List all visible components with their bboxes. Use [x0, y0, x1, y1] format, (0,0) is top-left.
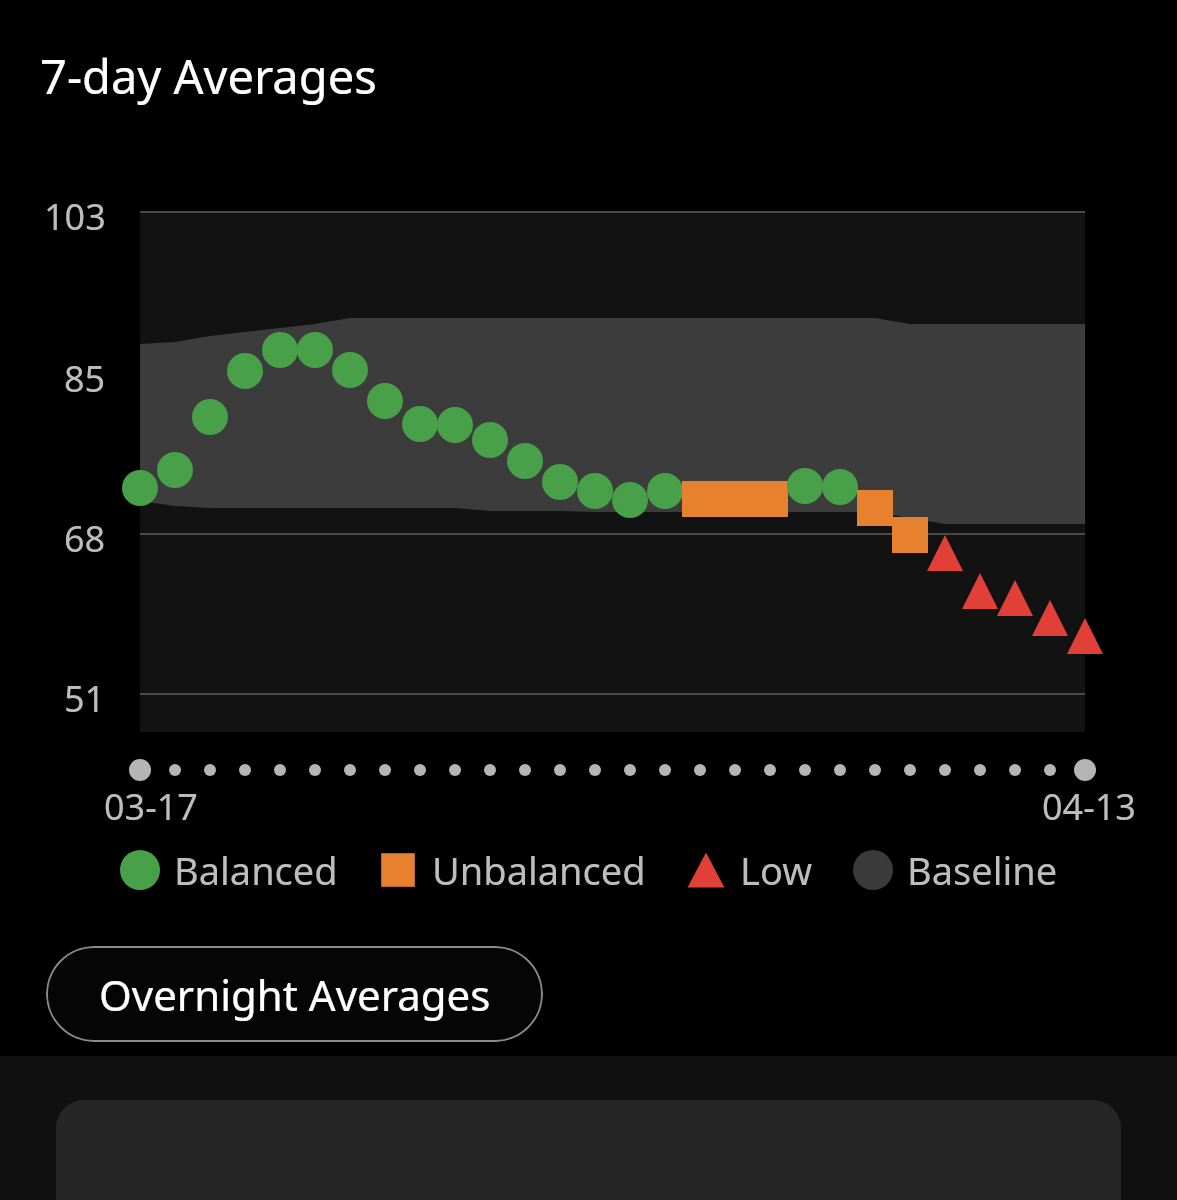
button[interactable]: Unbalanced	[378, 844, 646, 896]
staticText: 51	[64, 674, 106, 723]
staticText: 85	[64, 354, 106, 403]
staticText: 03-17	[104, 782, 198, 831]
button[interactable]: Baseline	[853, 844, 1058, 896]
staticText: Overnight Averages	[99, 966, 491, 1023]
staticText: Balanced	[174, 844, 338, 896]
staticText: 04-13	[1042, 782, 1136, 831]
button[interactable]: Balanced	[120, 844, 338, 896]
staticText: 7-day Averages	[40, 44, 377, 108]
staticText: Unbalanced	[432, 844, 646, 896]
staticText: 103	[44, 192, 106, 241]
staticText: 68	[64, 514, 106, 563]
staticText: Baseline	[907, 844, 1058, 896]
staticText: Low	[740, 844, 813, 896]
button[interactable]: Overnight Averages	[46, 946, 543, 1042]
button[interactable]: Low	[686, 844, 813, 896]
